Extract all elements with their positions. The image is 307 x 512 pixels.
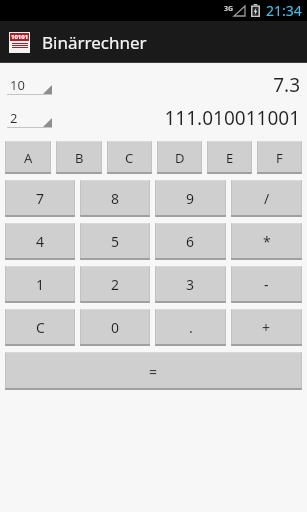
staticText: E xyxy=(226,149,234,167)
staticText: . xyxy=(189,318,193,337)
staticText: 21:34 xyxy=(266,1,302,20)
staticText: 8 xyxy=(111,189,120,208)
staticText: Binärrechner xyxy=(42,31,147,54)
staticText: * xyxy=(263,232,271,251)
button[interactable]: Base 10 selector xyxy=(7,74,52,95)
button[interactable]: . xyxy=(155,309,226,346)
staticText: F xyxy=(276,149,283,167)
button[interactable]: 8 xyxy=(80,180,150,217)
button[interactable]: 2 xyxy=(80,266,150,303)
staticText: C xyxy=(125,149,134,167)
button[interactable]: = xyxy=(5,352,302,390)
staticText: C xyxy=(36,318,45,337)
button[interactable]: * xyxy=(231,223,302,260)
staticText: 9 xyxy=(186,189,195,208)
button[interactable]: / xyxy=(231,180,302,217)
button[interactable]: 5 xyxy=(80,223,150,260)
staticText: 4 xyxy=(36,232,45,251)
button[interactable]: 3 xyxy=(155,266,226,303)
staticText: 10101 xyxy=(11,33,29,41)
button[interactable]: 1 xyxy=(5,266,75,303)
button[interactable]: D xyxy=(157,141,202,174)
staticText: A xyxy=(24,149,33,167)
staticText: / xyxy=(264,189,270,208)
staticText: 2 xyxy=(10,109,18,127)
button[interactable]: A xyxy=(5,141,51,174)
button[interactable]: Base 2 selector xyxy=(7,107,52,128)
staticText: 5 xyxy=(111,232,120,251)
staticText: 0 xyxy=(111,318,120,337)
button[interactable]: + xyxy=(231,309,302,346)
staticText: D xyxy=(175,149,185,167)
staticText: 2 xyxy=(111,275,120,294)
button[interactable]: 9 xyxy=(155,180,226,217)
staticText: B xyxy=(75,149,84,167)
button[interactable]: 4 xyxy=(5,223,75,260)
staticText: 3 xyxy=(186,275,195,294)
staticText: 10 xyxy=(10,76,25,94)
staticText: 111.010011001 xyxy=(58,105,300,131)
staticText: - xyxy=(264,275,269,294)
button[interactable]: 0 xyxy=(80,309,150,346)
button[interactable]: 7 xyxy=(5,180,75,217)
staticText: 1 xyxy=(36,275,45,294)
staticText: + xyxy=(262,318,271,337)
staticText: 6 xyxy=(186,232,195,251)
button[interactable]: B xyxy=(56,141,102,174)
button[interactable]: F xyxy=(257,141,302,174)
staticText: 3G xyxy=(224,4,234,14)
button[interactable]: C xyxy=(107,141,152,174)
button[interactable]: - xyxy=(231,266,302,303)
staticText: = xyxy=(149,362,158,381)
button[interactable]: E xyxy=(207,141,252,174)
button[interactable]: C xyxy=(5,309,75,346)
button[interactable]: 6 xyxy=(155,223,226,260)
staticText: 7.3 xyxy=(58,72,300,98)
staticText: 7 xyxy=(36,189,45,208)
